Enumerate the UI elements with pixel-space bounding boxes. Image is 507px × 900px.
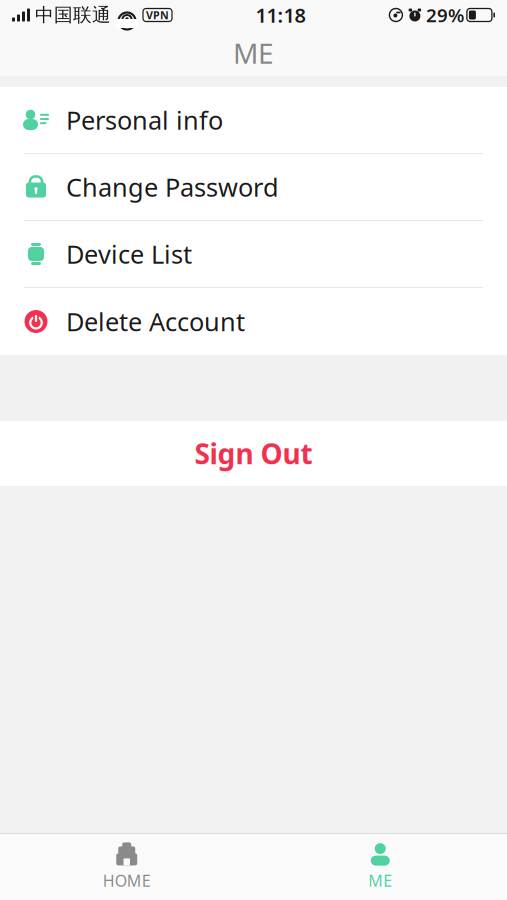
- button[interactable]: Change Password: [0, 154, 507, 221]
- staticText: Personal info: [66, 103, 223, 137]
- staticText: Device List: [66, 237, 192, 271]
- staticText: Sign Out: [194, 435, 312, 472]
- staticText: ME: [233, 34, 274, 72]
- button[interactable]: Device List: [0, 221, 507, 288]
- button[interactable]: ME: [253, 834, 507, 900]
- staticText: 中国联通: [35, 3, 111, 26]
- button[interactable]: Sign Out: [0, 421, 507, 486]
- button[interactable]: Personal info: [0, 87, 507, 154]
- staticText: 29%: [426, 3, 464, 27]
- staticText: VPN: [146, 8, 169, 22]
- staticText: 11:18: [255, 2, 305, 28]
- staticText: ME: [368, 870, 392, 891]
- staticText: Delete Account: [66, 305, 245, 338]
- button[interactable]: Delete Account: [0, 288, 507, 355]
- button[interactable]: HOME: [0, 834, 253, 900]
- staticText: Change Password: [66, 170, 279, 204]
- staticText: HOME: [103, 870, 151, 891]
